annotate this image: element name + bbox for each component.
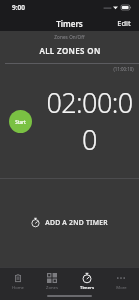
button[interactable]: Home [1,270,35,292]
staticText: Zones On/Off [54,34,85,40]
button[interactable]: ALL ZONES ON [0,45,139,56]
staticText: Edit [117,18,131,28]
staticText: 02:00:00 [40,84,139,158]
staticText: Home [12,285,24,290]
staticText: (11:00:10) [113,66,134,72]
button[interactable]: More [104,270,138,292]
staticText: Zones [46,285,58,290]
staticText: ALL ZONES ON [39,45,101,56]
button[interactable]: Start [0,84,139,158]
button[interactable]: Edit [109,16,139,30]
staticText: Start [15,119,26,125]
button[interactable]: Timers [70,270,104,292]
button[interactable]: Zones [35,270,69,292]
staticText: 9:00 [12,3,25,12]
staticText: ADD A 2ND TIMER [45,218,108,227]
staticText: Timers [56,18,83,29]
button[interactable]: ADD A 2ND TIMER [0,215,139,230]
button[interactable]: Start [9,110,32,133]
staticText: More [116,285,127,290]
staticText: Timers [80,285,94,290]
